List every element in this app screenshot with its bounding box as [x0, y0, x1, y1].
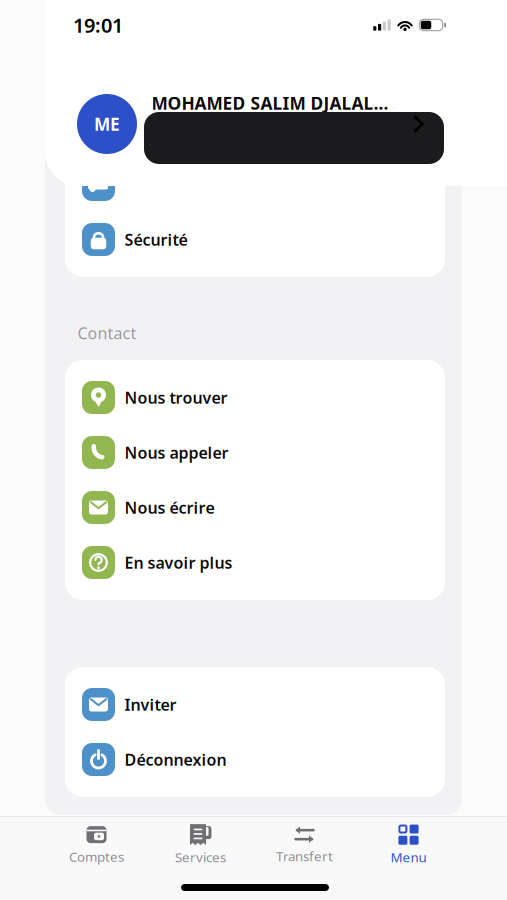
staticText: Transfert	[276, 847, 333, 865]
staticText: ME	[94, 112, 120, 135]
staticText: MOHAMED SALIM DJALAL...	[151, 91, 388, 114]
button[interactable]: Nous trouver	[65, 370, 445, 425]
staticText: En savoir plus	[124, 552, 232, 573]
staticText: Nous écrire	[124, 497, 214, 518]
button[interactable]: Sécurité	[65, 212, 445, 267]
staticText: Nous trouver	[124, 387, 227, 408]
staticText: Nous appeler	[124, 442, 228, 463]
button[interactable]: En savoir plus	[65, 535, 445, 590]
button[interactable]: Déconnexion	[65, 732, 445, 787]
staticText: Comptes	[69, 848, 124, 865]
button[interactable]: Nous appeler	[65, 425, 445, 480]
button[interactable]: Nous écrire	[65, 480, 445, 535]
staticText: 19:01	[73, 12, 123, 38]
button[interactable]: Menu	[356, 819, 460, 871]
button[interactable]: Transfert	[252, 819, 356, 871]
staticText: Inviter	[124, 694, 176, 715]
staticText: Sécurité	[124, 229, 187, 250]
button[interactable]: Comptes	[44, 819, 148, 871]
staticText: Contact	[77, 322, 136, 344]
staticText: Services	[175, 848, 226, 866]
staticText: Menu	[390, 848, 426, 866]
button[interactable]: ME	[45, 79, 465, 169]
button[interactable]: Inviter	[65, 677, 445, 732]
button[interactable]: Services	[148, 819, 252, 871]
staticText: Déconnexion	[124, 749, 226, 770]
button[interactable]: Carte	[65, 157, 445, 212]
